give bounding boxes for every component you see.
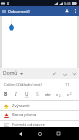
staticText: Formát odstavce [12, 122, 45, 128]
staticText: Dokument1 [8, 9, 31, 14]
staticText: 2 [59, 94, 61, 98]
button[interactable]: I [11, 89, 21, 100]
button[interactable]: Recent apps [52, 127, 65, 140]
button[interactable]: Navigation menu [0, 6, 8, 16]
staticText: S [36, 91, 39, 98]
button[interactable]: Superscript [64, 89, 74, 100]
staticText: abc [45, 92, 51, 97]
button[interactable]: Back [14, 127, 27, 140]
button[interactable]: Domů [0, 70, 26, 77]
staticText: I [15, 91, 17, 98]
staticText: 8:46 [64, 1, 71, 6]
button[interactable]: Undo [50, 68, 60, 79]
staticText: B [4, 91, 8, 98]
button[interactable]: Calibri (Základní text) [0, 79, 79, 89]
staticText: Calibri (Základní text) [4, 82, 42, 87]
staticText: Zvýraznit [12, 103, 30, 109]
staticText: 2 [70, 92, 72, 96]
button[interactable]: Hide ribbon [70, 68, 79, 79]
button[interactable]: S [32, 89, 42, 100]
button[interactable]: Share [62, 6, 72, 16]
staticText: Barva písma [12, 112, 37, 118]
button[interactable]: More options [72, 6, 79, 16]
button[interactable]: U [22, 89, 32, 100]
button[interactable]: Zvýraznit [0, 101, 79, 110]
button[interactable]: Formát odstavce [0, 120, 79, 129]
button[interactable]: Home [33, 127, 46, 140]
button[interactable]: abc [43, 89, 53, 100]
staticText: x [56, 92, 59, 97]
staticText: x [67, 92, 70, 97]
staticText: Domů [3, 70, 18, 77]
button[interactable]: B [1, 89, 11, 100]
button[interactable]: Subscript [53, 89, 63, 100]
staticText: U [25, 91, 29, 98]
staticText: 11 [65, 82, 70, 87]
button[interactable]: Barva písma [0, 110, 79, 119]
button[interactable]: Redo [60, 68, 70, 79]
